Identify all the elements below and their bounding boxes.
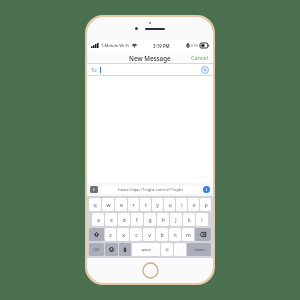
staticText: d: [122, 216, 126, 223]
staticText: x: [122, 231, 125, 238]
staticText: w: [106, 201, 111, 208]
button[interactable]: Expand: [90, 186, 98, 193]
button[interactable]: l: [196, 213, 208, 226]
button[interactable]: Return: [187, 243, 211, 256]
button[interactable]: Dictate: [119, 243, 131, 256]
staticText: 123: [93, 247, 100, 252]
staticText: m: [186, 231, 191, 238]
staticText: .: [180, 247, 181, 252]
button[interactable]: v: [143, 228, 155, 241]
button[interactable]: d: [118, 213, 130, 226]
button[interactable]: w: [102, 198, 114, 211]
button[interactable]: y: [152, 198, 163, 211]
button[interactable]: e: [115, 198, 127, 211]
staticText: To:: [91, 67, 98, 73]
button[interactable]: m: [182, 228, 194, 241]
staticText: i: [206, 187, 208, 193]
staticText: p: [204, 201, 208, 208]
staticText: l: [201, 216, 203, 223]
staticText: t: [145, 201, 147, 208]
button[interactable]: Shift: [89, 228, 104, 241]
button[interactable]: i: [176, 198, 187, 211]
button[interactable]: Cancel: [186, 52, 213, 63]
button[interactable]: Emoji: [105, 243, 118, 256]
staticText: 61%: [191, 43, 199, 48]
staticText: Cancel: [191, 54, 208, 61]
staticText: o: [192, 201, 196, 208]
staticText: 3:19 PM: [153, 43, 170, 49]
staticText: g: [148, 216, 152, 223]
button[interactable]: https://app.!1sight.com/u/!1sight: [101, 186, 200, 194]
staticText: https://app.!1sight.com/u/!1sight: [118, 187, 183, 193]
staticText: h: [161, 216, 165, 223]
button[interactable]: r: [128, 198, 139, 211]
button[interactable]: n: [169, 228, 181, 241]
button[interactable]: o: [188, 198, 199, 211]
staticText: a: [97, 216, 100, 223]
button[interactable]: z: [105, 228, 116, 241]
staticText: r: [132, 201, 135, 208]
staticText: v: [148, 231, 151, 238]
button[interactable]: Backspace: [195, 228, 211, 241]
staticText: ›: [93, 186, 95, 193]
button[interactable]: .: [174, 243, 186, 256]
staticText: return: [194, 247, 205, 252]
staticText: T-Mobile Wi-Fi: [101, 43, 130, 49]
button[interactable]: Home: [142, 262, 159, 279]
button[interactable]: b: [156, 228, 168, 241]
staticText: @: [165, 247, 169, 252]
staticText: b: [160, 231, 164, 238]
button[interactable]: h: [157, 213, 169, 226]
button[interactable]: g: [144, 213, 156, 226]
button[interactable]: Info: [203, 186, 210, 193]
staticText: z: [109, 231, 112, 238]
button[interactable]: k: [183, 213, 195, 226]
button[interactable]: q: [89, 198, 101, 211]
staticText: n: [173, 231, 177, 238]
button[interactable]: j: [170, 213, 182, 226]
staticText: f: [136, 216, 138, 223]
staticText: q: [93, 201, 97, 208]
staticText: y: [156, 201, 159, 208]
button[interactable]: space: [132, 243, 160, 256]
button[interactable]: a: [92, 213, 104, 226]
button[interactable]: s: [105, 213, 117, 226]
staticText: space: [141, 247, 151, 252]
staticText: s: [110, 216, 113, 223]
button[interactable]: x: [117, 228, 129, 241]
button[interactable]: t: [140, 198, 151, 211]
staticText: k: [188, 216, 191, 223]
staticText: u: [168, 201, 172, 208]
button[interactable]: Add contact: [201, 66, 209, 74]
button[interactable]: p: [200, 198, 211, 211]
staticText: New Message: [129, 54, 171, 62]
button[interactable]: @: [161, 243, 173, 256]
staticText: i: [181, 201, 183, 208]
button[interactable]: u: [164, 198, 175, 211]
staticText: c: [135, 231, 138, 238]
staticText: e: [120, 201, 123, 208]
staticText: j: [175, 216, 177, 223]
button[interactable]: f: [131, 213, 143, 226]
button[interactable]: c: [130, 228, 142, 241]
button[interactable]: Numbers: [89, 243, 104, 256]
